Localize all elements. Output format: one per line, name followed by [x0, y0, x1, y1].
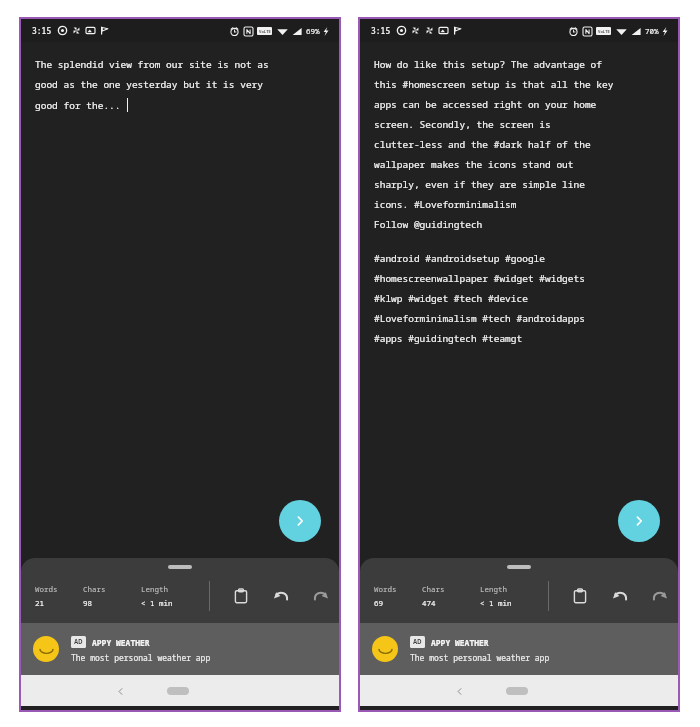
staticText: Length [141, 584, 168, 594]
staticText: sharply, even if they are simple line [374, 178, 585, 191]
staticText: good as the one yesterday but it is very [35, 78, 264, 91]
button[interactable]: Copy to clipboard [228, 583, 254, 609]
staticText: icons. #Loveforminimalism [374, 198, 517, 211]
staticText: Words [35, 584, 58, 594]
staticText: < 1 min [480, 598, 512, 608]
button[interactable]: Redo [647, 583, 673, 609]
staticText: APPY WEATHER [92, 637, 150, 648]
staticText: Words [374, 584, 397, 594]
staticText: Chars [83, 584, 106, 594]
staticText: 69 [374, 598, 383, 608]
staticText: The most personal weather app [410, 652, 550, 663]
staticText: clutter-less and the #dark half of the [374, 138, 591, 151]
staticText: VoLTE [598, 29, 610, 34]
button[interactable]: Copy to clipboard [567, 583, 593, 609]
staticText: wallpaper makes the icons stand out [374, 158, 574, 171]
staticText: good for the... [35, 99, 121, 112]
button[interactable]: AD [21, 623, 339, 675]
button[interactable]: Next [618, 500, 660, 542]
staticText: The splendid view from our site is not a… [35, 58, 269, 71]
staticText: 21 [35, 598, 44, 608]
staticText: Follow @guidingtech [374, 218, 483, 231]
staticText: 70% [645, 26, 659, 36]
button[interactable]: Back [109, 680, 131, 702]
staticText: 3:15 [32, 25, 52, 36]
button[interactable]: Home [161, 681, 195, 701]
staticText: 69% [306, 26, 320, 36]
staticText: 3:15 [371, 25, 391, 36]
button[interactable]: Back [448, 680, 470, 702]
staticText: #apps #guidingtech #teamgt [374, 332, 523, 345]
staticText: < 1 min [141, 598, 173, 608]
button[interactable]: Undo [607, 583, 633, 609]
staticText: this #homescreen setup is that all the k… [374, 78, 614, 91]
button[interactable]: Redo [308, 583, 334, 609]
staticText: screen. Secondly, the screen is [374, 118, 551, 131]
staticText: APPY WEATHER [431, 637, 489, 648]
button[interactable]: Next [279, 500, 321, 542]
staticText: AD [413, 637, 422, 647]
staticText: How do like this setup? The advantage of [374, 58, 603, 71]
button[interactable]: Home [500, 681, 534, 701]
staticText: #android #androidsetup #google [374, 252, 546, 265]
staticText: AD [74, 637, 83, 647]
staticText: Length [480, 584, 507, 594]
staticText: 98 [83, 598, 92, 608]
staticText: VoLTE [259, 29, 271, 34]
button[interactable]: AD [360, 623, 678, 675]
button[interactable]: Undo [268, 583, 294, 609]
staticText: The most personal weather app [71, 652, 211, 663]
staticText: #klwp #widget #tech #device [374, 292, 528, 305]
staticText: 474 [422, 598, 436, 608]
staticText: Chars [422, 584, 445, 594]
staticText: #homescreenwallpaper #widget #widgets [374, 272, 585, 285]
staticText: apps can be accessed right on your home [374, 98, 597, 111]
staticText: #Loveforminimalism #tech #androidapps [374, 312, 585, 325]
